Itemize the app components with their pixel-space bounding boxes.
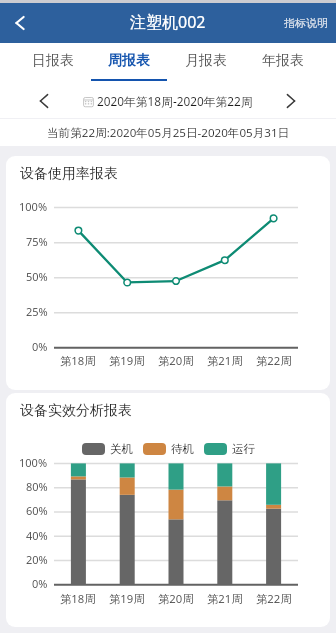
button[interactable]: 运行: [204, 442, 255, 456]
button[interactable]: 年报表: [244, 43, 321, 81]
staticText: 25%: [26, 304, 48, 319]
staticText: 80%: [26, 479, 48, 494]
staticText: 设备实效分析报表: [20, 402, 132, 420]
button[interactable]: 日报表: [15, 43, 91, 81]
button[interactable]: 待机: [143, 442, 194, 456]
staticText: 第22周: [256, 353, 292, 368]
staticText: 100%: [19, 199, 48, 214]
button[interactable]: 关机: [82, 442, 133, 456]
staticText: 60%: [26, 503, 48, 518]
staticText: 第20周: [158, 591, 194, 606]
staticText: 第18周: [60, 353, 96, 368]
staticText: 第20周: [158, 353, 194, 368]
staticText: 2020年第18周-2020年第22周: [97, 93, 253, 109]
staticText: 40%: [26, 528, 48, 543]
staticText: 运行: [232, 442, 255, 456]
staticText: 日报表: [32, 52, 74, 70]
staticText: 第21周: [207, 353, 243, 368]
staticText: 注塑机002: [130, 11, 206, 33]
staticText: 年报表: [262, 52, 304, 70]
button[interactable]: Previous period: [25, 81, 63, 119]
staticText: 75%: [26, 234, 48, 249]
staticText: 第19周: [109, 591, 145, 606]
staticText: 0%: [32, 576, 48, 591]
staticText: 当前第22周:2020年05月25日-2020年05月31日: [47, 125, 290, 141]
staticText: 设备使用率报表: [20, 165, 118, 183]
staticText: 关机: [110, 442, 133, 456]
button[interactable]: 指标说明: [275, 3, 336, 43]
staticText: 0%: [32, 339, 48, 354]
button[interactable]: 周报表: [91, 43, 167, 81]
staticText: 第18周: [60, 591, 96, 606]
staticText: 50%: [26, 269, 48, 284]
staticText: 周报表: [108, 52, 150, 70]
button[interactable]: 月报表: [167, 43, 244, 81]
staticText: 第19周: [109, 353, 145, 368]
button[interactable]: Next period: [272, 81, 310, 119]
staticText: 第21周: [207, 591, 243, 606]
staticText: 100%: [19, 455, 48, 470]
staticText: 月报表: [185, 52, 227, 70]
button[interactable]: Back: [0, 3, 39, 43]
staticText: 待机: [171, 442, 194, 456]
staticText: 指标说明: [284, 16, 328, 30]
staticText: 20%: [26, 552, 48, 567]
staticText: 第22周: [256, 591, 292, 606]
